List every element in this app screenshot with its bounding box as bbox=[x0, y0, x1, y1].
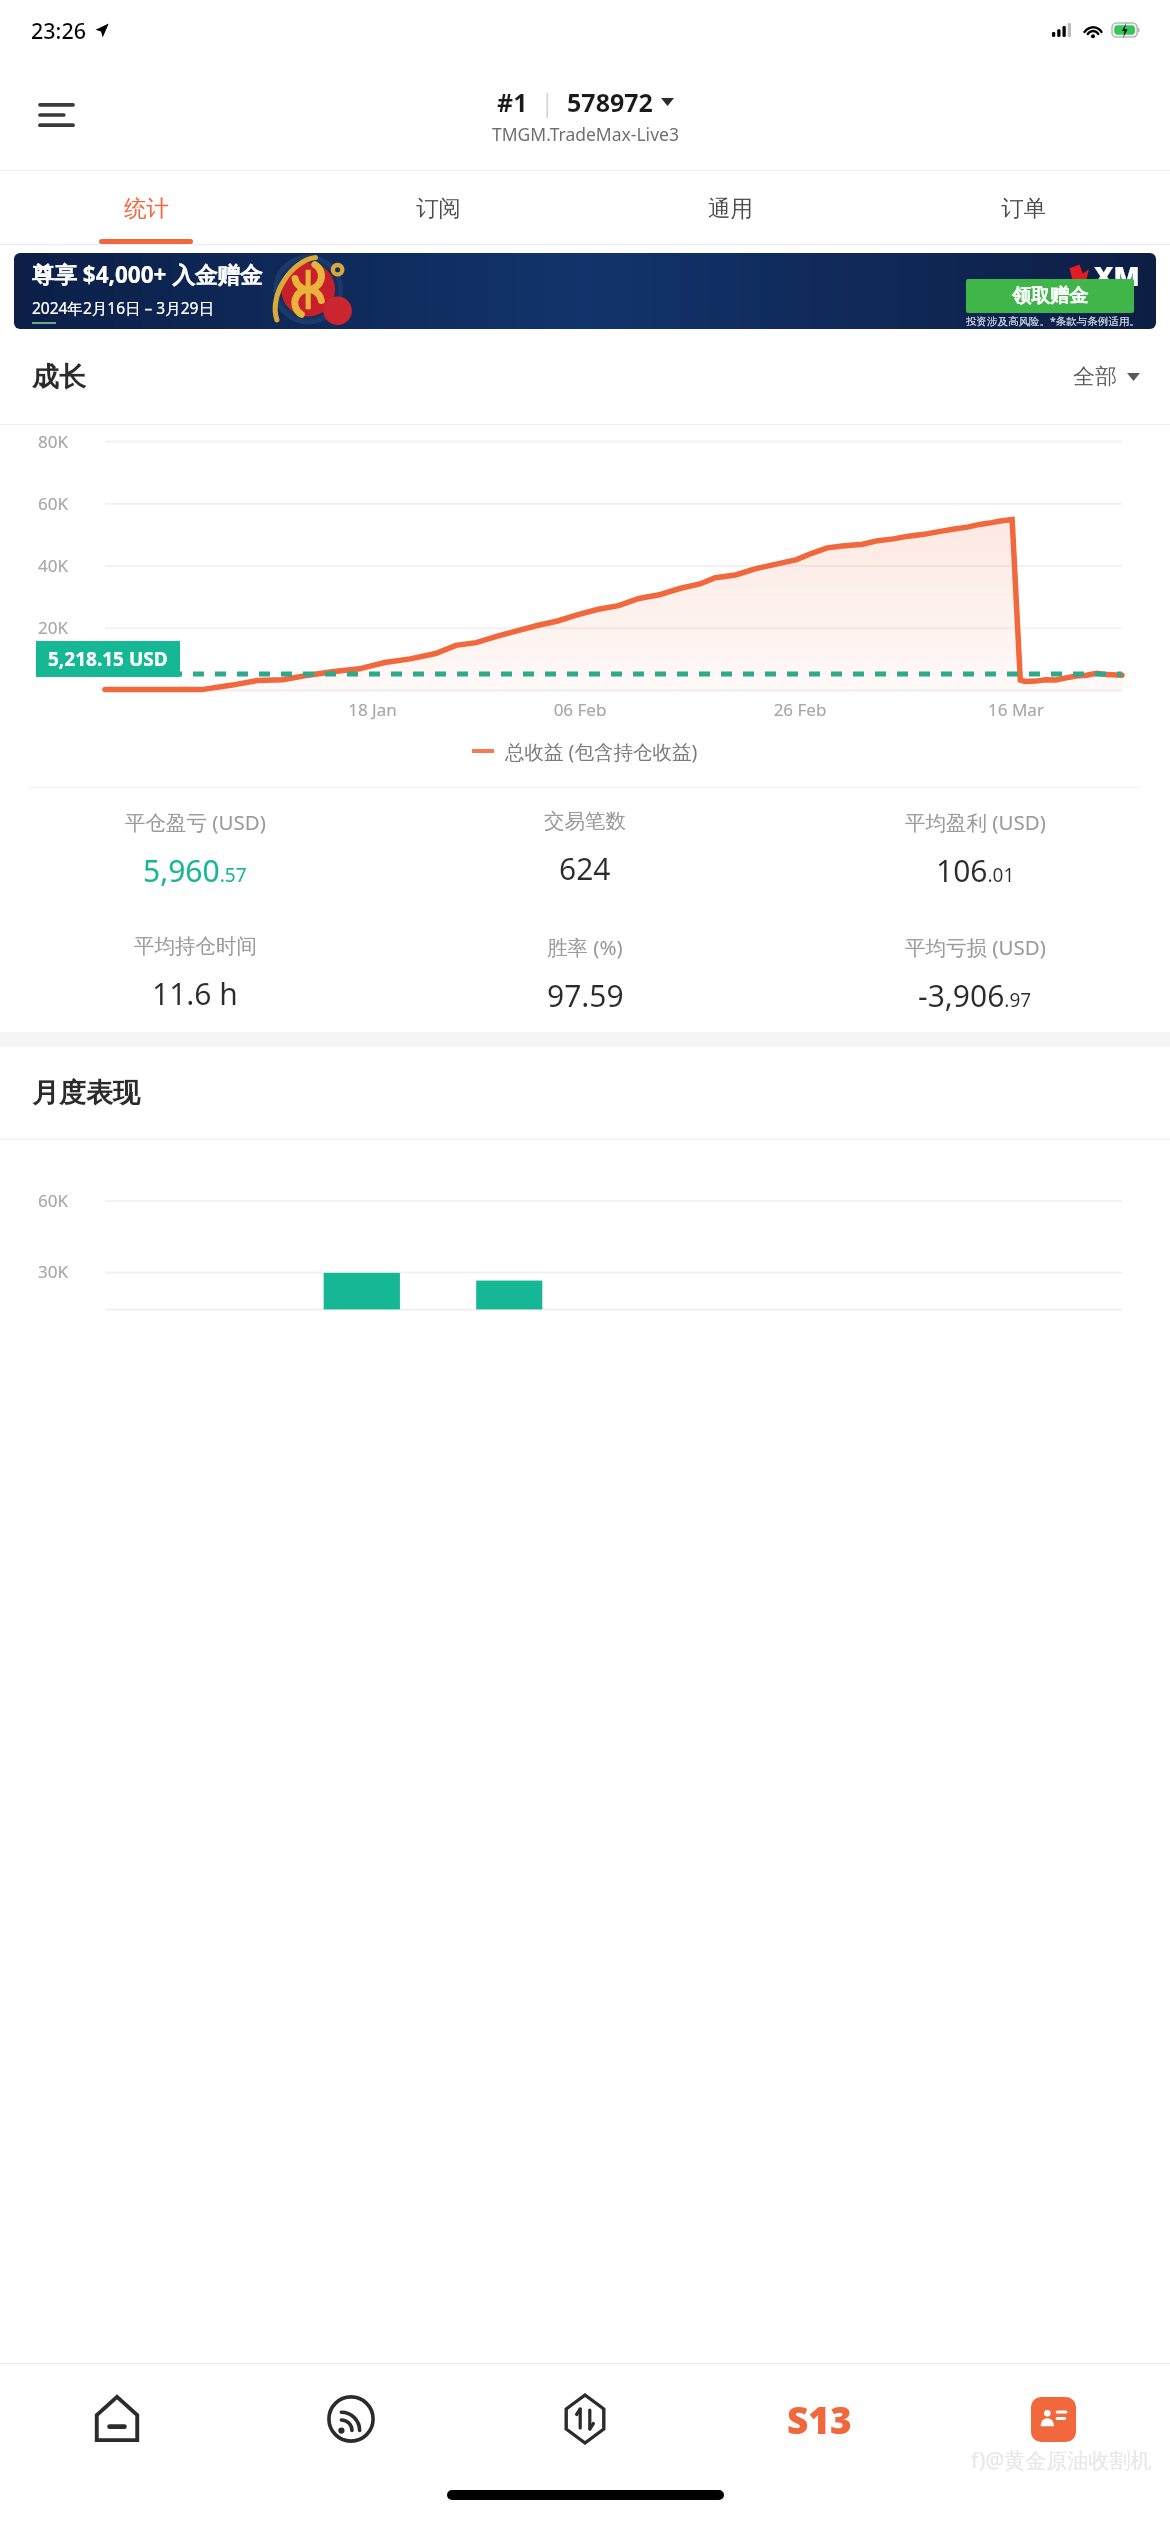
button[interactable]: Signals bbox=[234, 2364, 468, 2474]
staticText: 龙转乾坤，新春福利 bbox=[32, 328, 199, 329]
staticText: 97.59 bbox=[547, 975, 624, 1016]
staticText: 交易笔数 bbox=[544, 808, 626, 834]
button[interactable]: 通用 bbox=[584, 171, 877, 244]
button[interactable]: 全部 bbox=[1073, 363, 1140, 391]
staticText: 06 Feb bbox=[470, 698, 690, 721]
staticText: 统计 bbox=[124, 194, 169, 222]
staticText: 总收益 (包含持仓收益) bbox=[505, 738, 698, 765]
staticText: #1 | 578972 bbox=[497, 85, 653, 119]
button[interactable]: 统计 bbox=[0, 171, 292, 244]
staticText: 26 Feb bbox=[690, 698, 910, 721]
staticText: 平均持仓时间 bbox=[134, 933, 257, 959]
staticText: TMGM.TradeMax-Live3 bbox=[492, 122, 679, 146]
staticText: 5,218.15 USD bbox=[48, 646, 168, 672]
button[interactable]: Profile bbox=[936, 2364, 1170, 2474]
staticText: 胜率 (%) bbox=[547, 933, 623, 961]
staticText: 2024年2月16日 – 3月29日 bbox=[32, 297, 214, 318]
button[interactable]: Trade bbox=[468, 2364, 702, 2474]
staticText: 成长 bbox=[32, 360, 86, 394]
staticText: 16 Mar bbox=[910, 698, 1122, 721]
staticText: 投资涉及高风险。*条款与条例适用。 bbox=[966, 314, 1140, 328]
staticText: 平均盈利 (USD) bbox=[905, 808, 1046, 836]
staticText: S13 bbox=[787, 2394, 852, 2444]
staticText: 订单 bbox=[1001, 194, 1046, 222]
staticText: 订阅 bbox=[416, 194, 461, 222]
staticText: 全部 bbox=[1073, 363, 1117, 391]
staticText: 40K bbox=[38, 554, 68, 577]
staticText: 60K bbox=[38, 492, 68, 515]
button[interactable]: 订阅 bbox=[292, 171, 584, 244]
button[interactable]: 尊享 $4,000+ 入金赠金 bbox=[14, 253, 1156, 329]
staticText: 624 bbox=[559, 848, 611, 889]
button[interactable]: #1 | 578972 bbox=[492, 85, 679, 146]
staticText: 尊享 $4,000+ 入金赠金 bbox=[32, 259, 263, 290]
staticText: 106.01 bbox=[936, 850, 1015, 891]
button[interactable]: Home bbox=[0, 2364, 234, 2474]
staticText: 5,960.57 bbox=[143, 850, 247, 891]
staticText: 平均亏损 (USD) bbox=[905, 933, 1046, 961]
staticText: 18 Jan bbox=[275, 698, 470, 721]
staticText: -3,906.97 bbox=[918, 975, 1032, 1016]
staticText: 30K bbox=[38, 1260, 68, 1283]
staticText: XM bbox=[1094, 257, 1140, 294]
staticText: 60K bbox=[38, 1189, 68, 1212]
button[interactable]: Menu bbox=[28, 87, 84, 143]
button[interactable]: S13 bbox=[702, 2364, 936, 2474]
button[interactable]: 订单 bbox=[877, 171, 1170, 244]
staticText: f)@黄金原油收割机 bbox=[971, 2446, 1152, 2475]
staticText: 23:26 bbox=[31, 16, 87, 45]
staticText: 通用 bbox=[708, 194, 753, 222]
staticText: 平仓盈亏 (USD) bbox=[125, 808, 266, 836]
staticText: 月度表现 bbox=[32, 1076, 140, 1110]
staticText: 20K bbox=[38, 616, 68, 639]
staticText: 80K bbox=[38, 430, 68, 453]
staticText: 11.6 h bbox=[152, 973, 238, 1014]
staticText: 领取赠金 bbox=[1012, 284, 1088, 308]
button[interactable]: 领取赠金 bbox=[966, 279, 1134, 313]
